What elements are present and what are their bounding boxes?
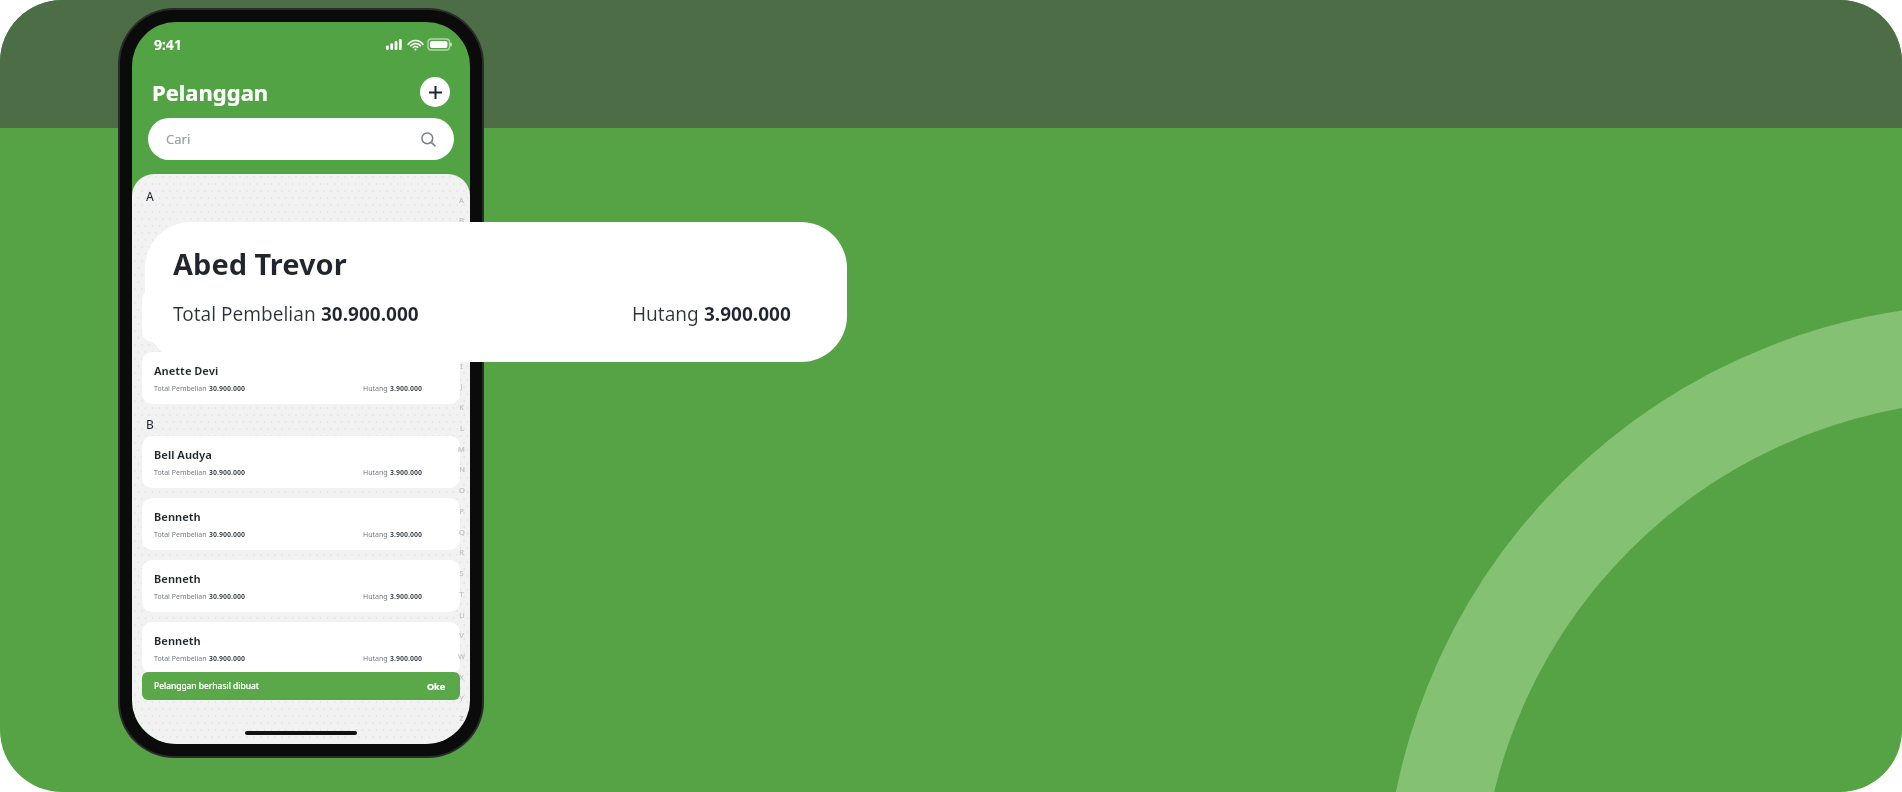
staticText: 9:41 (154, 35, 182, 54)
staticText: A (146, 188, 154, 204)
staticText: Hutang (363, 530, 390, 540)
staticText: 30.900.000 (209, 468, 245, 478)
staticText: 3.900.000 (390, 654, 422, 664)
staticText: X (459, 672, 464, 682)
button[interactable]: Benneth (142, 498, 460, 550)
staticText: A (459, 195, 464, 205)
staticText: Pelanggan berhasil dibuat (154, 680, 259, 692)
staticText: Bell Audya (154, 447, 212, 462)
staticText: S (459, 568, 464, 578)
staticText: Oke (427, 680, 446, 692)
staticText: Hutang (632, 301, 704, 327)
staticText: 3.900.000 (390, 592, 422, 602)
button[interactable]: Allison Prada (142, 290, 460, 342)
staticText: O (459, 485, 465, 495)
staticText: T (459, 589, 464, 599)
staticText: Total Pembelian (154, 654, 209, 664)
button[interactable]: Abed Trevor (145, 222, 847, 362)
staticText: 30.900.000 (209, 530, 245, 540)
staticText: 30.900.000 (209, 384, 245, 394)
staticText: 3.900.000 (390, 468, 422, 478)
staticText: Total Pembelian (154, 468, 209, 478)
button[interactable]: Benneth (142, 622, 460, 674)
staticText: R (459, 547, 464, 557)
staticText: Anette Devi (154, 363, 219, 378)
staticText: Hutang (363, 592, 390, 602)
staticText: V (459, 630, 464, 640)
staticText: Allison Prada (154, 301, 226, 316)
staticText: L (460, 423, 464, 433)
staticText: Hutang (363, 384, 390, 394)
staticText: Pelanggan (152, 77, 269, 107)
button[interactable]: Anette Devi (142, 352, 460, 404)
button[interactable]: Cari (148, 118, 454, 160)
staticText: 30.900.000 (209, 592, 245, 602)
button[interactable]: Pelanggan berhasil dibuat (142, 672, 460, 700)
staticText: Total Pembelian (154, 384, 209, 394)
staticText: M (458, 444, 465, 454)
staticText: Abed Trevor (173, 244, 347, 283)
staticText: Benneth (154, 633, 201, 648)
staticText: Total Pembelian (154, 592, 209, 602)
staticText: Hutang (363, 468, 390, 478)
staticText: 30.900.000 (321, 301, 419, 327)
staticText: 3.900.000 (390, 530, 422, 540)
staticText: Total Pembelian (173, 301, 321, 327)
staticText: J (460, 381, 463, 391)
button[interactable]: Tambah pelanggan (420, 77, 450, 107)
staticText: Total Pembelian (154, 530, 209, 540)
staticText: Benneth (154, 571, 201, 586)
staticText: 30.900.000 (209, 654, 245, 664)
staticText: Hutang (363, 654, 390, 664)
staticText: B (459, 215, 464, 225)
staticText: Y (459, 693, 464, 703)
staticText: U (459, 610, 465, 620)
staticText: 3.900.000 (704, 301, 791, 327)
staticText: Benneth (154, 509, 201, 524)
button[interactable]: Bell Audya (142, 436, 460, 488)
staticText: B (146, 416, 154, 432)
button[interactable]: Benneth (142, 560, 460, 612)
staticText: P (459, 506, 464, 516)
staticText: Cari (166, 130, 191, 148)
staticText: 3.900.000 (390, 384, 422, 394)
staticText: Q (459, 527, 465, 537)
staticText: Z (459, 713, 464, 723)
staticText: K (459, 402, 464, 412)
staticText: W (458, 651, 465, 661)
staticText: N (459, 464, 465, 474)
staticText: I (460, 361, 463, 371)
